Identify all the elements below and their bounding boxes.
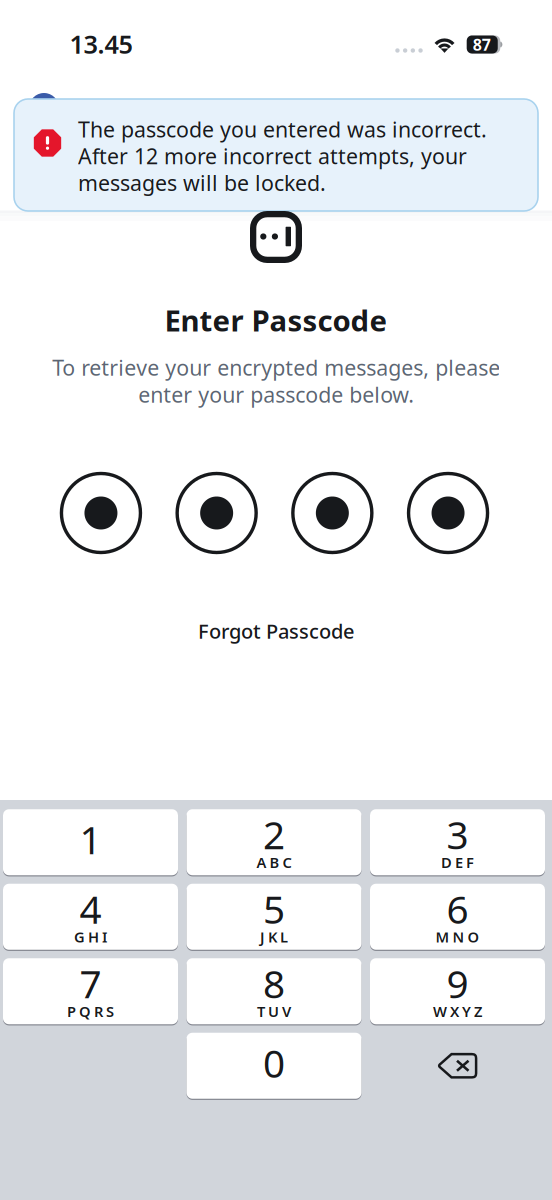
staticText: F <box>466 852 474 872</box>
staticText: Q <box>79 1001 91 1021</box>
staticText: C <box>282 852 291 872</box>
staticText: E <box>455 852 463 872</box>
staticText: L <box>280 927 288 946</box>
staticText: V <box>282 1001 291 1021</box>
button[interactable]: Delete <box>370 1033 545 1099</box>
staticText: H <box>88 927 99 946</box>
staticText: 3 <box>446 809 468 860</box>
button[interactable]: 6 <box>370 884 545 950</box>
staticText: K <box>268 927 277 946</box>
button[interactable]: 9 <box>370 958 545 1024</box>
button[interactable]: 7 <box>3 958 178 1024</box>
button[interactable]: Forgot Passcode <box>182 608 370 654</box>
staticText: 6 <box>446 883 468 934</box>
staticText: 1 <box>79 814 101 865</box>
button[interactable]: 8 <box>186 958 361 1024</box>
staticText: U <box>268 1001 279 1021</box>
staticText: P <box>67 1001 76 1021</box>
staticText: D <box>441 852 452 872</box>
staticText: A <box>256 852 266 872</box>
staticText: Forgot Passcode <box>198 618 354 644</box>
button[interactable]: 3 <box>370 809 545 875</box>
button[interactable]: 4 <box>3 884 178 950</box>
button[interactable]: 1 <box>3 809 178 875</box>
staticText: Y <box>462 1001 471 1021</box>
staticText: Enter Passcode <box>164 300 387 339</box>
staticText: J <box>260 927 265 946</box>
staticText: 8 <box>263 958 285 1009</box>
staticText: 9 <box>446 958 468 1009</box>
staticText: G <box>74 927 85 946</box>
staticText: R <box>94 1001 103 1021</box>
staticText: O <box>467 927 479 946</box>
staticText: X <box>450 1001 459 1021</box>
staticText: Z <box>474 1001 482 1021</box>
staticText: To retrieve your encrypted messages, ple… <box>52 353 500 409</box>
staticText: 4 <box>79 883 101 934</box>
staticText: N <box>452 927 464 946</box>
staticText: 5 <box>263 883 285 934</box>
staticText: M <box>435 927 449 946</box>
staticText: W <box>433 1001 447 1021</box>
staticText: 0 <box>263 1037 285 1088</box>
button[interactable]: 5 <box>186 884 361 950</box>
staticText: T <box>257 1001 265 1021</box>
staticText: I <box>102 927 107 946</box>
staticText: 87 <box>473 34 491 55</box>
staticText: 7 <box>79 958 101 1009</box>
staticText: B <box>269 852 279 872</box>
staticText: S <box>106 1001 114 1021</box>
button[interactable]: 0 <box>186 1033 361 1099</box>
staticText: 2 <box>263 809 285 860</box>
staticText: The passcode you entered was incorrect. … <box>78 115 487 197</box>
button[interactable]: 2 <box>186 809 361 875</box>
staticText: 13.45 <box>69 27 132 61</box>
